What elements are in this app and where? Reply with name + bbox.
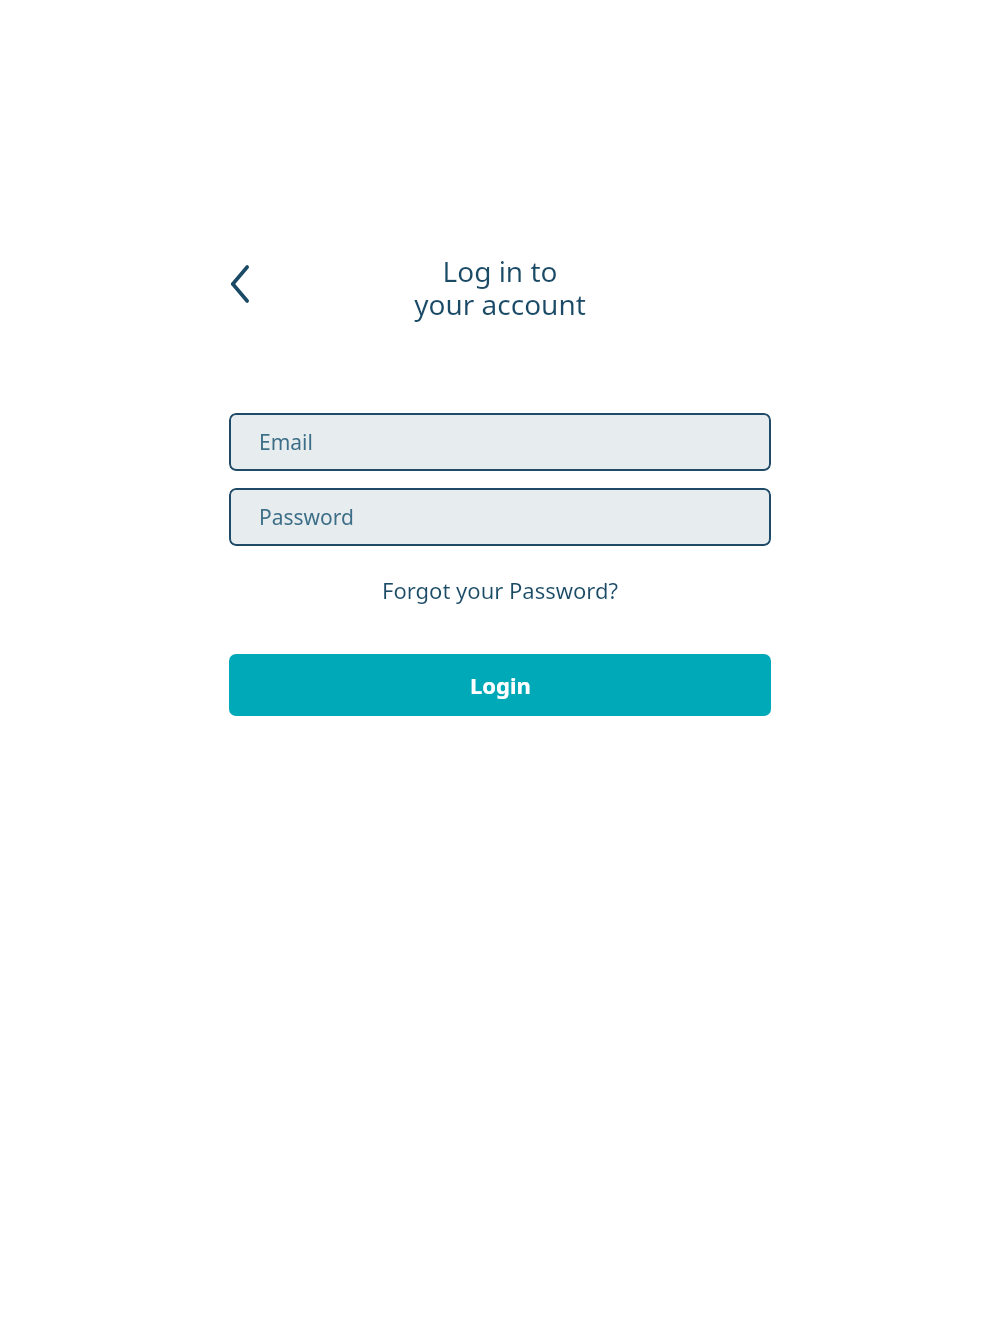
staticText: Log in to your account <box>414 252 586 323</box>
staticText: Forgot your Password? <box>382 575 619 605</box>
button[interactable]: Email <box>229 413 771 471</box>
staticText: Email <box>259 428 313 457</box>
button[interactable]: Login <box>229 654 771 716</box>
button[interactable]: Back <box>204 248 276 320</box>
staticText: Login <box>470 670 531 700</box>
button[interactable]: Forgot your Password? <box>229 565 771 615</box>
staticText: Password <box>259 503 354 532</box>
button[interactable]: Password <box>229 488 771 546</box>
